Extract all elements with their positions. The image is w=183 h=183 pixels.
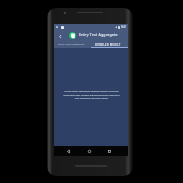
button[interactable]: Recent apps <box>105 147 113 155</box>
button[interactable]: DETAILED RESULT <box>91 41 128 48</box>
button[interactable]: ENTRY TEST AGGREGATE <box>54 41 91 48</box>
staticText: Lorem ipsum aggregated updated results o… <box>63 90 120 99</box>
staticText: Entry Test Aggregate <box>79 32 118 37</box>
button[interactable]: Back <box>64 147 72 155</box>
staticText: 9:41 <box>121 25 127 29</box>
staticText: DETAILED RESULT <box>95 43 121 47</box>
button[interactable]: Back <box>57 33 63 39</box>
button[interactable]: Home <box>85 147 93 155</box>
staticText: ENTRY TEST AGGREGATE <box>58 43 85 46</box>
